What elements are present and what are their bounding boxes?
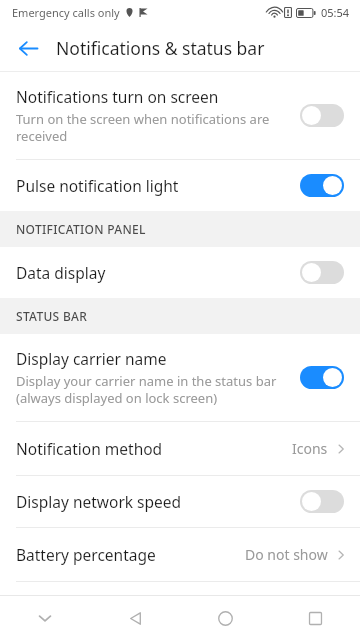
button[interactable]: On	[300, 174, 344, 197]
staticText: Display network speed	[16, 491, 182, 512]
staticText: Display your carrier name in the status …	[16, 372, 277, 407]
button[interactable]: Back	[6, 26, 50, 70]
button[interactable]: Off	[300, 490, 344, 513]
button[interactable]: Pulse notification light	[0, 160, 360, 211]
staticText: Icons	[292, 439, 328, 458]
button[interactable]: Battery percentage	[0, 528, 360, 581]
staticText: NOTIFICATION PANEL	[16, 221, 146, 237]
button[interactable]: Home	[180, 596, 270, 640]
button[interactable]: Recent apps	[270, 596, 360, 640]
button[interactable]: Data display	[0, 247, 360, 298]
staticText: Data display	[16, 262, 106, 283]
button[interactable]: Notification method	[0, 422, 360, 475]
staticText: Do not show	[245, 545, 328, 564]
staticText: 05:54	[321, 5, 350, 20]
staticText: Display carrier name	[16, 348, 167, 369]
button[interactable]: Off	[300, 261, 344, 284]
button[interactable]: Off	[300, 104, 344, 127]
button[interactable]: On	[300, 366, 344, 389]
button[interactable]: Display carrier name	[0, 334, 360, 421]
button[interactable]: Back	[90, 596, 180, 640]
staticText: Notifications & status bar	[56, 36, 265, 60]
button[interactable]: Notifications turn on screen	[0, 72, 360, 159]
staticText: Turn on the screen when notifications ar…	[16, 110, 270, 145]
button[interactable]: Display network speed	[0, 476, 360, 527]
staticText: Notification method	[16, 438, 292, 459]
button[interactable]: Hide navigation bar	[0, 596, 90, 640]
staticText: Emergency calls only	[12, 5, 120, 20]
staticText: STATUS BAR	[16, 308, 88, 324]
staticText: Notifications turn on screen	[16, 86, 219, 107]
staticText: Battery percentage	[16, 544, 245, 565]
staticText: Pulse notification light	[16, 175, 179, 196]
